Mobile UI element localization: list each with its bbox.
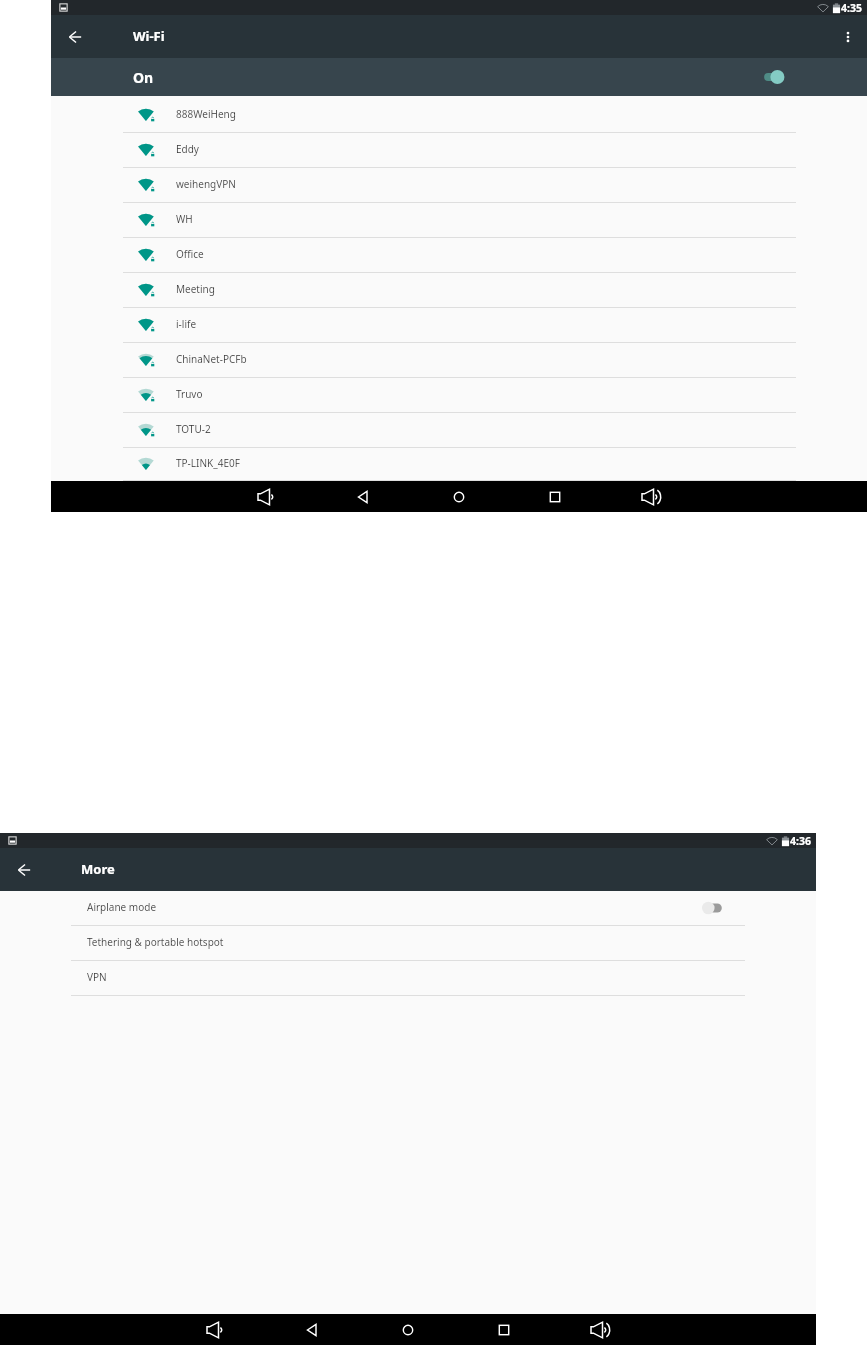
button[interactable]: On [51, 58, 867, 96]
button[interactable]: Volume up [590, 1320, 610, 1340]
staticText: Meeting [176, 282, 215, 296]
button[interactable]: weihengVPN [51, 168, 867, 203]
button[interactable]: Navigate up [13, 858, 37, 882]
staticText: WH [176, 212, 193, 226]
staticText: TOTU-2 [176, 422, 211, 436]
staticText: weihengVPN [176, 177, 236, 191]
staticText: 4:35 [841, 1, 862, 15]
staticText: On [133, 68, 154, 87]
button[interactable]: Recent apps [545, 487, 565, 507]
button[interactable]: Eddy [51, 133, 867, 168]
button[interactable]: Airplane mode [0, 891, 816, 926]
button[interactable]: Recent apps [494, 1320, 514, 1340]
button[interactable]: Navigate up [64, 25, 88, 49]
button[interactable]: Volume down [257, 487, 277, 507]
button[interactable]: Meeting [51, 273, 867, 308]
staticText: Tethering & portable hotspot [87, 935, 224, 949]
staticText: Airplane mode [87, 900, 157, 914]
staticText: i-life [176, 317, 197, 331]
button[interactable]: Airplane mode toggle [690, 897, 730, 919]
button[interactable]: Volume down [206, 1320, 226, 1340]
button[interactable]: i-life [51, 308, 867, 343]
staticText: VPN [87, 970, 107, 984]
staticText: Eddy [176, 142, 199, 156]
button[interactable]: Truvo [51, 378, 867, 413]
button[interactable]: Volume up [641, 487, 661, 507]
staticText: 4:36 [790, 834, 811, 848]
staticText: ChinaNet-PCFb [176, 352, 247, 366]
button[interactable]: Tethering & portable hotspot [0, 926, 816, 961]
staticText: More [81, 860, 115, 878]
staticText: Truvo [176, 387, 203, 401]
button[interactable]: More options [836, 25, 860, 49]
button[interactable]: ChinaNet-PCFb [51, 343, 867, 378]
button[interactable]: Home [398, 1320, 418, 1340]
staticText: Wi-Fi [133, 27, 165, 45]
button[interactable]: TP-LINK_4E0F [51, 448, 867, 481]
button[interactable]: Office [51, 238, 867, 273]
button[interactable]: Back [353, 487, 373, 507]
button[interactable]: TOTU-2 [51, 413, 867, 448]
staticText: TP-LINK_4E0F [176, 456, 240, 470]
staticText: Office [176, 247, 204, 261]
button[interactable]: Wi-Fi toggle [751, 66, 791, 88]
staticText: 888WeiHeng [176, 107, 236, 121]
button[interactable]: Home [449, 487, 469, 507]
button[interactable]: 888WeiHeng [51, 98, 867, 133]
button[interactable]: Back [302, 1320, 322, 1340]
button[interactable]: WH [51, 203, 867, 238]
button[interactable]: VPN [0, 961, 816, 996]
